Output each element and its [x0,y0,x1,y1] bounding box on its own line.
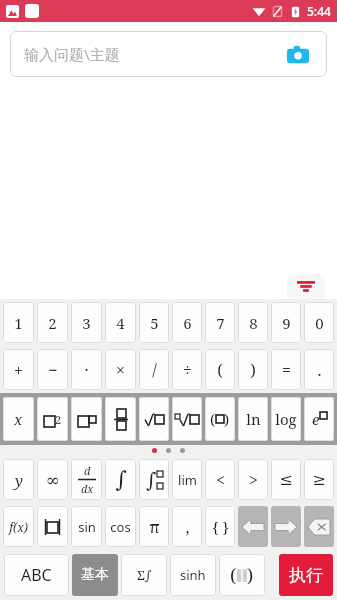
staticText: d [84,463,91,478]
staticText: × [116,359,125,381]
staticText: e [312,409,320,429]
staticText: , [185,516,190,538]
button[interactable]: . [304,349,334,390]
staticText: cos [110,518,131,536]
staticText: · [84,359,89,381]
button[interactable]: ABC [4,554,69,596]
button[interactable]: Camera [283,39,313,69]
button[interactable]: 8 [238,302,268,343]
button[interactable]: math key [37,459,68,500]
button[interactable]: math key [205,506,235,547]
staticText: ) [250,359,256,381]
button[interactable]: math key [3,459,34,500]
button[interactable]: = [271,349,301,390]
staticText: ÷ [183,359,192,381]
button[interactable]: math key [71,459,102,500]
staticText: dx [81,481,94,496]
staticText: ) [247,563,254,588]
button[interactable]: × [105,349,136,390]
button[interactable]: math key [238,397,268,441]
staticText: > [249,469,258,491]
staticText: 9 [282,313,291,333]
button[interactable]: 1 [3,302,34,343]
staticText: sin [78,518,96,536]
button[interactable]: math key [172,459,202,500]
staticText: − [48,359,58,381]
button[interactable]: math key [3,506,34,547]
staticText: Σ∫ [137,566,152,584]
staticText: f(x) [9,519,28,535]
button[interactable]: math key [139,459,169,500]
button[interactable]: math key [105,506,136,547]
button[interactable]: math key [271,459,301,500]
staticText: π [149,516,160,538]
staticText: 执行 [289,565,323,586]
button[interactable]: 执行 [279,554,333,596]
staticText: log [275,409,297,429]
staticText: ∞ [45,470,60,490]
staticText: 1 [14,313,23,333]
button[interactable]: math key [271,397,301,441]
staticText: 4 [116,313,125,333]
staticText: . [317,359,322,381]
staticText: < [216,469,225,491]
button[interactable]: Matrix [219,554,265,596]
button[interactable]: math key [3,397,34,441]
button[interactable]: math key [139,506,169,547]
button[interactable]: Σ∫ [121,554,167,596]
button[interactable]: 4 [105,302,136,343]
staticText: 6 [183,313,192,333]
button[interactable]: math key [105,459,136,500]
staticText: ABC [21,564,52,586]
button[interactable]: math key [172,506,202,547]
button[interactable]: ( [205,349,235,390]
staticText: { } [212,517,229,537]
button[interactable]: ÷ [172,349,202,390]
staticText: 输入问题\主题 [24,44,120,64]
staticText: ( [230,563,237,588]
button[interactable]: math key [71,397,102,441]
staticText: 5 [150,313,159,333]
button[interactable]: 6 [172,302,202,343]
button[interactable]: 5 [139,302,169,343]
button[interactable]: math key [37,397,68,441]
button[interactable]: math key [71,506,102,547]
staticText: 3 [82,313,91,333]
button[interactable]: sinh [170,554,216,596]
button[interactable]: ) [238,349,268,390]
button[interactable]: 2 [37,302,68,343]
staticText: lim [178,471,197,489]
staticText: ∫ [146,468,157,491]
button[interactable]: 基本 [72,554,118,596]
staticText: ) [224,409,230,429]
button[interactable]: math key [205,397,235,441]
button[interactable]: math key [139,397,169,441]
button[interactable]: Move left [238,506,268,547]
button[interactable]: math key [105,397,136,441]
staticText: 0 [315,313,324,333]
staticText: y [15,470,23,490]
button[interactable]: − [37,349,68,390]
button[interactable]: 输入问题\主题 [10,31,327,77]
button[interactable]: + [3,349,34,390]
button[interactable]: math key [37,506,68,547]
staticText: + [14,359,23,381]
button[interactable]: Move right [271,506,301,547]
staticText: ∫ [115,467,127,493]
button[interactable]: math key [238,459,268,500]
staticText: 8 [249,313,258,333]
button[interactable]: 7 [205,302,235,343]
button[interactable]: math key [205,459,235,500]
button[interactable]: Filter [287,275,325,299]
button[interactable]: math key [304,459,334,500]
button[interactable]: / [139,349,169,390]
staticText: ( [217,359,223,381]
button[interactable]: math key [304,397,334,441]
button[interactable]: 0 [304,302,334,343]
button[interactable]: 3 [71,302,102,343]
button[interactable]: Backspace [304,506,334,547]
button[interactable]: · [71,349,102,390]
button[interactable]: math key [172,397,202,441]
staticText: ln [246,409,261,429]
button[interactable]: 9 [271,302,301,343]
